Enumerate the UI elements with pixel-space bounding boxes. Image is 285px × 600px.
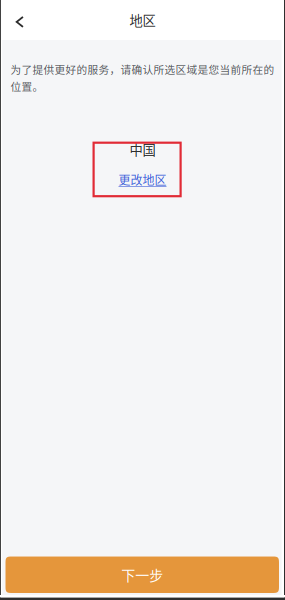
staticText: 中国 xyxy=(129,139,155,159)
staticText: 地区 xyxy=(129,10,155,30)
staticText: 更改地区 xyxy=(118,171,166,188)
button[interactable]: 更改地区 xyxy=(118,171,166,188)
button[interactable]: Back xyxy=(5,7,35,37)
button[interactable]: 下一步 xyxy=(5,556,279,593)
staticText: 为了提供更好的服务，请确认所选区域是您当前所在的位置。 xyxy=(10,61,274,94)
staticText: 下一步 xyxy=(121,565,163,585)
